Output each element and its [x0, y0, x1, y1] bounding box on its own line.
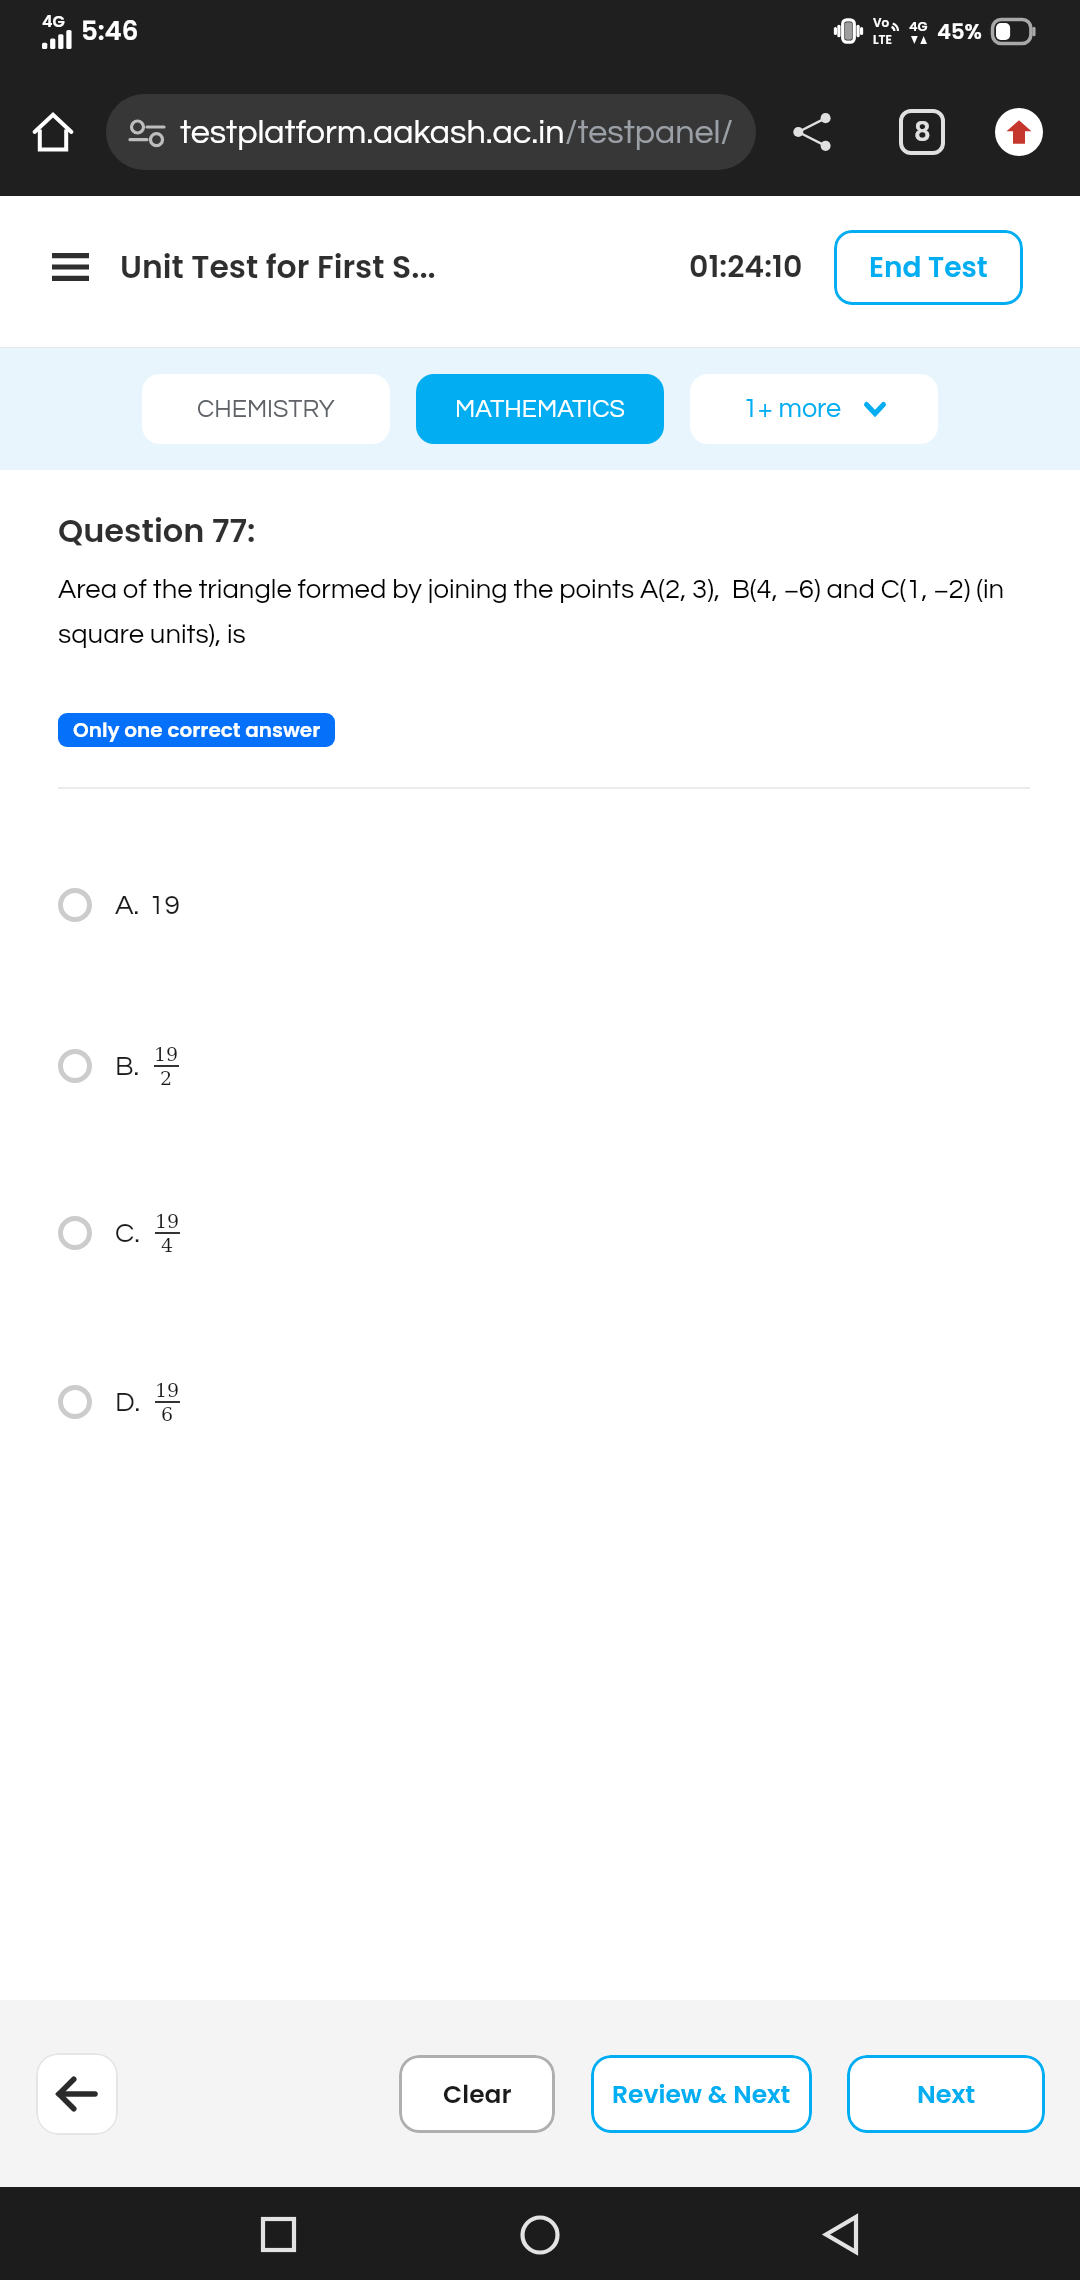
staticText: 2: [160, 1067, 173, 1089]
button[interactable]: C.: [0, 1195, 1080, 1271]
staticText: LTE: [873, 31, 892, 48]
button[interactable]: Review & Next: [591, 2055, 812, 2133]
staticText: 01:24:10: [689, 246, 803, 288]
staticText: Next: [917, 2076, 976, 2112]
button[interactable]: D.: [0, 1364, 1080, 1440]
button[interactable]: Back: [36, 2053, 118, 2135]
staticText: 19: [149, 891, 180, 920]
staticText: testplatform.aakash.ac.in: [180, 115, 565, 150]
staticText: 19: [155, 1379, 180, 1401]
button[interactable]: A.: [0, 867, 1080, 943]
staticText: 6: [161, 1403, 174, 1425]
button[interactable]: Update: [974, 68, 1064, 196]
staticText: Vo: [873, 14, 890, 31]
staticText: 1+ more: [743, 395, 842, 423]
staticText: Unit Test for First S...: [120, 245, 436, 289]
staticText: 19: [154, 1043, 179, 1065]
staticText: 4: [161, 1234, 174, 1256]
staticText: Clear: [443, 2077, 512, 2112]
staticText: Review & Next: [612, 2077, 791, 2112]
staticText: End Test: [869, 248, 988, 287]
button[interactable]: MATHEMATICS: [416, 374, 664, 444]
button[interactable]: Home: [0, 82, 106, 182]
button[interactable]: End Test: [834, 230, 1023, 305]
button[interactable]: testplatform.aakash.ac.in: [106, 94, 756, 170]
staticText: Area of the triangle formed by joining t…: [58, 575, 1040, 649]
staticText: B.: [115, 1052, 140, 1081]
staticText: 5:46: [81, 13, 139, 49]
staticText: 4G: [42, 10, 65, 32]
staticText: /testpanel/: [565, 115, 733, 150]
staticText: MATHEMATICS: [455, 396, 625, 422]
staticText: 8: [914, 114, 931, 150]
staticText: 4G: [909, 17, 928, 35]
staticText: A.: [115, 891, 140, 920]
button[interactable]: 1+ more: [690, 374, 938, 444]
button[interactable]: CHEMISTRY: [142, 374, 390, 444]
button[interactable]: B.: [0, 1028, 1080, 1104]
button[interactable]: Back: [781, 2187, 901, 2280]
staticText: Only one correct answer: [73, 716, 321, 744]
button[interactable]: Share: [756, 68, 870, 196]
staticText: CHEMISTRY: [197, 396, 335, 422]
button[interactable]: Next: [847, 2055, 1045, 2133]
button[interactable]: Menu: [42, 237, 98, 297]
button[interactable]: Clear: [399, 2055, 555, 2133]
button[interactable]: Tabs: [870, 68, 974, 196]
staticText: D.: [115, 1388, 141, 1417]
staticText: Question 77:: [58, 508, 256, 553]
staticText: 45%: [937, 17, 982, 46]
button[interactable]: Home: [480, 2187, 600, 2280]
staticText: C.: [115, 1219, 141, 1248]
staticText: 19: [155, 1210, 180, 1232]
button[interactable]: Recents: [218, 2187, 338, 2280]
